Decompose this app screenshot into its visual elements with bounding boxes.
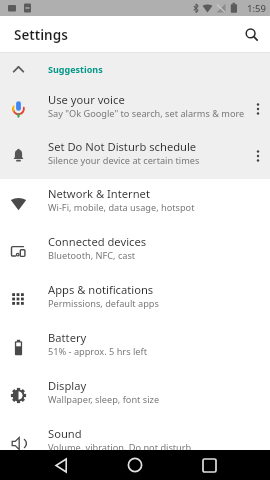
staticText: Use your voice bbox=[48, 92, 125, 107]
button[interactable] bbox=[246, 132, 270, 179]
button[interactable] bbox=[234, 17, 270, 53]
staticText: Wi-Fi, mobile, data usage, hotspot bbox=[48, 201, 195, 214]
staticText: 1:59 bbox=[247, 2, 266, 15]
button[interactable]: Use your voice bbox=[0, 85, 270, 132]
button[interactable] bbox=[183, 450, 235, 480]
staticText: Connected devices bbox=[48, 234, 147, 249]
button[interactable]: Set Do Not Disturb schedule bbox=[0, 132, 270, 179]
staticText: Suggestions bbox=[48, 63, 103, 75]
staticText: Network & Internet bbox=[48, 186, 150, 201]
staticText: Bluetooth, NFC, cast bbox=[48, 249, 136, 262]
button[interactable]: Connected devices bbox=[0, 227, 270, 275]
staticText: Battery bbox=[48, 330, 87, 345]
button[interactable] bbox=[35, 450, 87, 480]
button[interactable] bbox=[109, 450, 161, 480]
staticText: Say "Ok Google" to search, set alarms & … bbox=[48, 107, 245, 120]
staticText: Settings bbox=[14, 26, 68, 44]
staticText: Apps & notifications bbox=[48, 282, 154, 297]
button[interactable]: Battery bbox=[0, 323, 270, 371]
staticText: Volume, vibration, Do not disturb bbox=[48, 441, 192, 454]
staticText: Permissions, default apps bbox=[48, 297, 159, 310]
staticText: Silence your device at certain times bbox=[48, 154, 200, 167]
staticText: 51% - approx. 5 hrs left bbox=[48, 345, 147, 358]
staticText: Sound bbox=[48, 426, 82, 441]
button[interactable] bbox=[246, 85, 270, 132]
button[interactable]: Sound bbox=[0, 419, 270, 467]
button[interactable]: Network & Internet bbox=[0, 179, 270, 227]
button[interactable]: Suggestions bbox=[0, 53, 270, 85]
staticText: Set Do Not Disturb schedule bbox=[48, 139, 197, 154]
button[interactable]: Display bbox=[0, 371, 270, 419]
staticText: Wallpaper, sleep, font size bbox=[48, 393, 160, 406]
staticText: Display bbox=[48, 378, 87, 393]
button[interactable]: Apps & notifications bbox=[0, 275, 270, 323]
